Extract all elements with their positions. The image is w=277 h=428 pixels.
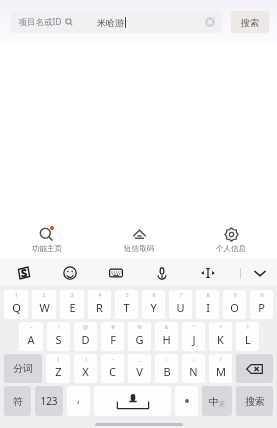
staticText: * bbox=[219, 323, 223, 330]
staticText: 6 bbox=[152, 291, 156, 298]
button[interactable]: 1 bbox=[4, 290, 28, 319]
staticText: ~ bbox=[29, 323, 33, 330]
staticText: S bbox=[55, 332, 62, 347]
staticText: Z bbox=[55, 364, 62, 379]
staticText: 7 bbox=[179, 291, 183, 298]
button[interactable]: : bbox=[155, 354, 178, 383]
button[interactable]: 2 bbox=[32, 290, 56, 319]
staticText: K bbox=[217, 332, 224, 347]
button[interactable]: 项目名或ID bbox=[11, 11, 222, 33]
button[interactable]: Keyboard layout bbox=[93, 259, 139, 286]
button[interactable] bbox=[94, 386, 171, 416]
button[interactable]: 个人信息 bbox=[185, 221, 277, 259]
staticText: D bbox=[81, 332, 90, 347]
staticText: & bbox=[164, 323, 169, 330]
staticText: 5 bbox=[125, 291, 129, 298]
staticText: I bbox=[206, 300, 210, 315]
button[interactable]: @ bbox=[74, 322, 97, 351]
button[interactable]: 中 bbox=[202, 386, 232, 416]
staticText: 个人信息 bbox=[216, 244, 246, 253]
button[interactable]: ! bbox=[47, 322, 70, 351]
button[interactable]: 短信取码 bbox=[93, 221, 185, 259]
button[interactable]: Sogou input bbox=[0, 259, 47, 286]
button[interactable] bbox=[175, 386, 198, 416]
button[interactable]: * bbox=[209, 322, 232, 351]
staticText: Y bbox=[150, 300, 157, 315]
staticText: 123 bbox=[40, 394, 58, 408]
button[interactable]: 符 bbox=[4, 386, 31, 416]
button[interactable]: Hide keyboard bbox=[252, 265, 268, 281]
staticText: L bbox=[245, 332, 251, 347]
staticText: 9 bbox=[233, 291, 237, 298]
button[interactable]: ( bbox=[46, 354, 70, 383]
button[interactable]: - bbox=[101, 354, 124, 383]
button[interactable]: ~ bbox=[19, 322, 43, 351]
staticText: R bbox=[96, 300, 103, 315]
staticText: V bbox=[136, 364, 143, 379]
button[interactable]: & bbox=[155, 322, 178, 351]
staticText: 4 bbox=[98, 291, 102, 298]
staticText: H bbox=[162, 332, 171, 347]
button[interactable]: / bbox=[209, 354, 232, 383]
other: Backspace bbox=[234, 354, 275, 383]
staticText: : bbox=[166, 355, 168, 362]
button[interactable]: Voice input bbox=[139, 259, 185, 286]
button[interactable]: % bbox=[128, 322, 151, 351]
button[interactable]: Emoji bbox=[47, 259, 93, 286]
button[interactable]: " bbox=[182, 322, 205, 351]
staticText: % bbox=[137, 323, 142, 330]
button[interactable]: 搜索 bbox=[231, 11, 269, 33]
staticText: 1 bbox=[14, 291, 18, 298]
staticText: ) bbox=[85, 355, 87, 362]
button[interactable]: 0 bbox=[250, 290, 273, 319]
button[interactable]: 3 bbox=[60, 290, 84, 319]
staticText: 2 bbox=[42, 291, 46, 298]
staticText: 3 bbox=[70, 291, 74, 298]
staticText: B bbox=[163, 364, 171, 379]
staticText: U bbox=[176, 300, 185, 315]
button[interactable]: 9 bbox=[223, 290, 246, 319]
staticText: ? bbox=[246, 323, 249, 330]
staticText: 短信取码 bbox=[124, 244, 154, 253]
staticText: ; bbox=[193, 355, 195, 362]
button[interactable]: Move cursor bbox=[185, 259, 231, 286]
button[interactable]: ; bbox=[182, 354, 205, 383]
button[interactable]: 功能主页 bbox=[0, 221, 93, 259]
button[interactable]: 搜索 bbox=[236, 386, 273, 416]
staticText: 8 bbox=[206, 291, 210, 298]
staticText: A bbox=[27, 332, 35, 347]
staticText: 搜索 bbox=[241, 17, 259, 28]
staticText: X bbox=[82, 364, 89, 379]
button[interactable]: 8 bbox=[196, 290, 219, 319]
staticText: " bbox=[192, 323, 195, 330]
staticText: F bbox=[110, 332, 116, 347]
button[interactable]: , bbox=[67, 386, 90, 416]
button[interactable]: 5 bbox=[115, 290, 138, 319]
staticText: ! bbox=[58, 323, 60, 330]
button[interactable]: 6 bbox=[142, 290, 165, 319]
button[interactable] bbox=[236, 354, 273, 383]
button[interactable]: # bbox=[101, 322, 124, 351]
other: Space voice input bbox=[92, 386, 173, 416]
button[interactable]: 123 bbox=[35, 386, 63, 416]
staticText: E bbox=[69, 300, 76, 315]
staticText: 中 bbox=[209, 395, 219, 408]
staticText: # bbox=[111, 323, 115, 330]
staticText: - bbox=[112, 355, 114, 362]
staticText: M bbox=[216, 364, 226, 379]
staticText: _ bbox=[138, 355, 141, 362]
button[interactable]: 分词 bbox=[4, 354, 42, 383]
button[interactable]: _ bbox=[128, 354, 151, 383]
button[interactable]: ? bbox=[236, 322, 259, 351]
staticText: 功能主页 bbox=[32, 244, 62, 253]
button[interactable]: ) bbox=[74, 354, 97, 383]
staticText: W bbox=[39, 300, 50, 315]
staticText: G bbox=[135, 332, 144, 347]
staticText: 米哈游 bbox=[97, 17, 124, 28]
staticText: / bbox=[219, 355, 222, 362]
button[interactable]: Clear bbox=[205, 17, 215, 27]
staticText: 分词 bbox=[13, 362, 33, 375]
staticText: 项目名或ID bbox=[18, 16, 62, 28]
button[interactable]: 7 bbox=[169, 290, 192, 319]
button[interactable]: 4 bbox=[88, 290, 111, 319]
